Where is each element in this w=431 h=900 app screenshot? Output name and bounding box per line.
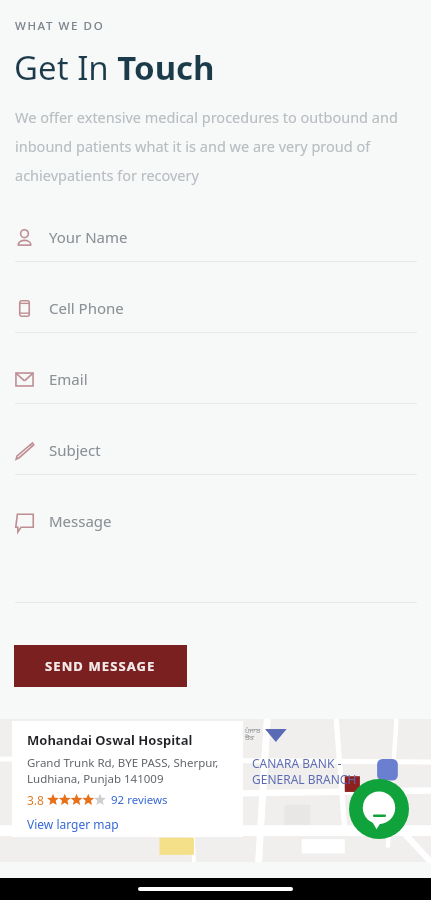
staticText: ਪੰਜਾਬ [245, 727, 261, 734]
button[interactable]: Your Name [0, 213, 431, 261]
staticText: Get In Touch [14, 45, 215, 90]
button[interactable]: Message [0, 497, 431, 545]
staticText: Message [49, 511, 112, 531]
button[interactable]: View larger map [27, 816, 119, 832]
staticText: Email [49, 369, 88, 389]
staticText: CANARA BANK - [252, 755, 342, 771]
staticText: 92 reviews [111, 792, 168, 808]
button[interactable]: Cell Phone [0, 284, 431, 332]
staticText: SEND MESSAGE [45, 657, 156, 675]
staticText: GENERAL BRANCH [252, 771, 357, 787]
staticText: WHAT WE DO [15, 18, 105, 34]
staticText: 3.8 [27, 792, 44, 808]
staticText: We offer extensive medical procedures to… [15, 107, 409, 185]
button[interactable]: Email [0, 355, 431, 403]
staticText: ਬੈਂਕ [245, 734, 255, 741]
staticText: Mohandai Oswal Hospital [27, 731, 193, 749]
button[interactable]: Mohandai Oswal Hospital [12, 721, 243, 837]
staticText: Your Name [49, 227, 128, 247]
staticText: Subject [49, 440, 101, 460]
staticText: Cell Phone [49, 298, 124, 318]
staticText: View larger map [27, 816, 119, 832]
button[interactable]: SEND MESSAGE [14, 645, 187, 687]
staticText: Grand Trunk Rd, BYE PASS, Sherpur, Ludhi… [27, 755, 219, 786]
button[interactable]: Subject [0, 426, 431, 474]
button[interactable]: Open chat [349, 779, 409, 839]
